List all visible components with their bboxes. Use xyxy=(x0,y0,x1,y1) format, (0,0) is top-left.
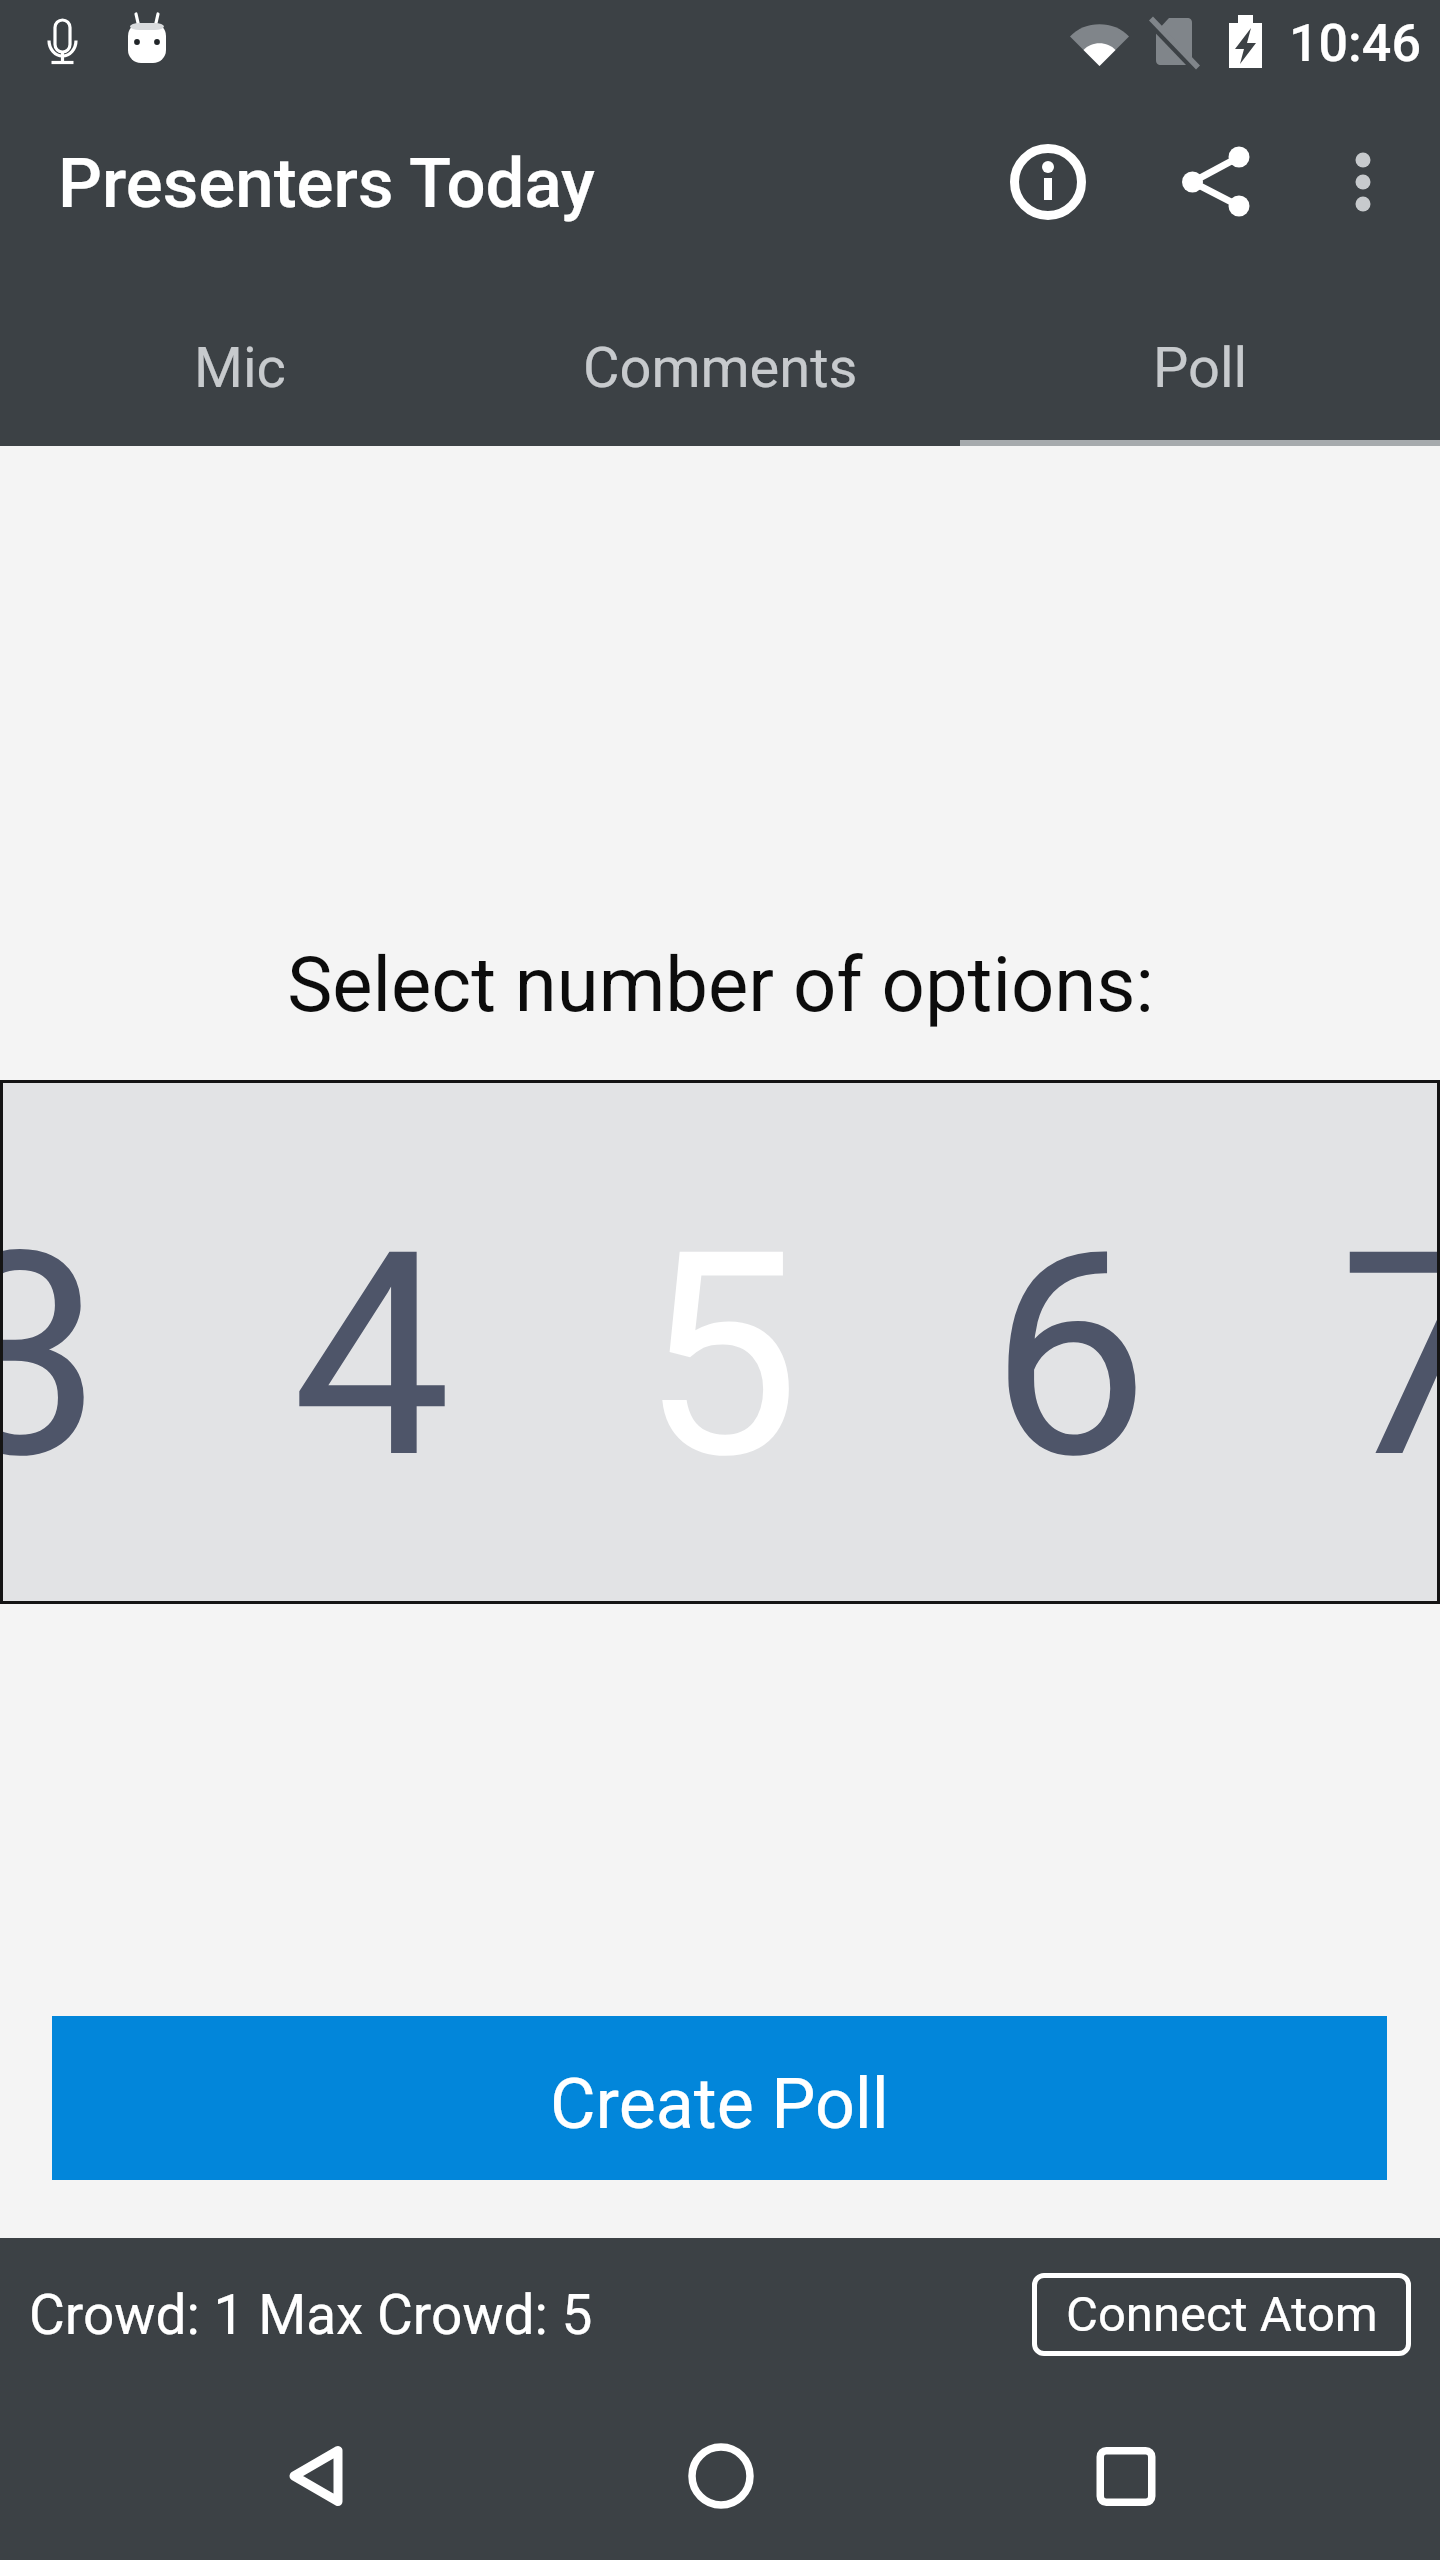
button[interactable]: More options xyxy=(1297,116,1429,248)
staticText: Mic xyxy=(194,335,286,401)
button[interactable]: Comments xyxy=(480,306,960,446)
button[interactable]: Create Poll xyxy=(52,2016,1387,2180)
button[interactable]: Poll xyxy=(960,306,1440,446)
button[interactable]: Mic xyxy=(0,306,480,446)
button[interactable]: Home xyxy=(651,2406,791,2546)
button[interactable]: 3 xyxy=(0,1080,1440,1604)
staticText: Connect Atom xyxy=(1066,2286,1378,2343)
staticText: Comments xyxy=(583,335,858,401)
button[interactable]: Info xyxy=(976,110,1120,254)
button[interactable]: Recents xyxy=(1056,2406,1196,2546)
button[interactable]: Share xyxy=(1143,110,1287,254)
staticText: 10:46 xyxy=(1289,13,1421,74)
staticText: Crowd: 1 Max Crowd: 5 xyxy=(29,2283,593,2347)
staticText: Poll xyxy=(1153,335,1248,401)
staticText: 5 xyxy=(641,1190,801,1522)
staticText: 7 xyxy=(1339,1190,1440,1522)
staticText: 6 xyxy=(990,1190,1150,1522)
staticText: Create Poll xyxy=(550,2063,889,2145)
staticText: 4 xyxy=(292,1190,452,1522)
staticText: 3 xyxy=(0,1190,103,1522)
staticText: Select number of options: xyxy=(287,940,1154,1029)
button[interactable]: Back xyxy=(246,2406,386,2546)
staticText: Presenters Today xyxy=(58,143,595,224)
button[interactable]: Connect Atom xyxy=(1032,2273,1411,2356)
